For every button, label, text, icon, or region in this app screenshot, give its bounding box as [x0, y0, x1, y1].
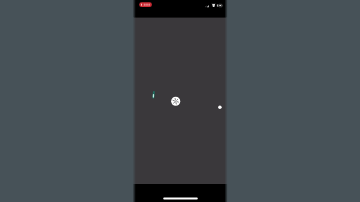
- button[interactable]: Marker: [151, 91, 157, 101]
- button[interactable]: Point: [217, 104, 223, 110]
- button[interactable]: Loading: [171, 96, 181, 106]
- button[interactable]: Recording indicator, 9:42: [139, 2, 153, 8]
- button[interactable]: Signal, Wi-Fi and battery status: [205, 2, 223, 9]
- button[interactable]: App content: [134, 18, 226, 184]
- button[interactable]: Home gesture bar: [163, 194, 198, 202]
